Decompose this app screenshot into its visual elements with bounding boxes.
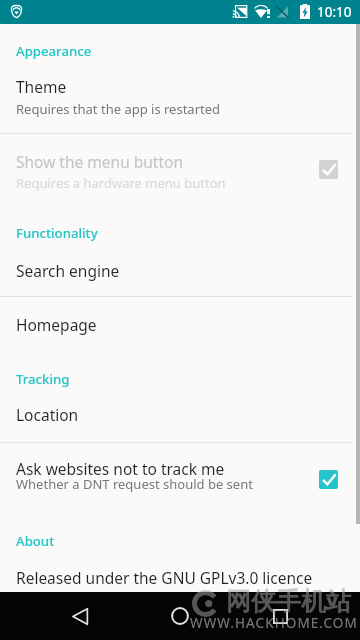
staticText: Ask websites not to track me (16, 458, 225, 479)
staticText: Appearance (16, 42, 92, 60)
staticText: Functionality (16, 224, 98, 242)
staticText: About (16, 532, 55, 550)
button[interactable]: Checked (319, 470, 338, 489)
staticText: 网侠手机站 (226, 586, 351, 617)
button[interactable]: Recent apps (256, 592, 304, 640)
button[interactable]: Back (56, 592, 104, 640)
button[interactable]: Unchecked (319, 160, 338, 179)
staticText: 10:10 (317, 3, 352, 21)
button[interactable]: Theme (0, 76, 360, 98)
button[interactable]: Ask websites not to track me (0, 458, 360, 480)
staticText: Tracking (16, 370, 70, 388)
button[interactable]: Homepage (0, 314, 360, 336)
staticText: Whether a DNT request should be sent (16, 475, 253, 493)
staticText: Location (16, 404, 79, 425)
button[interactable]: Released under the GNU GPLv3.0 licence (0, 567, 360, 589)
staticText: Homepage (16, 314, 97, 335)
button[interactable]: Home (156, 592, 204, 640)
button[interactable]: Show the menu button (0, 151, 360, 173)
staticText: Requires that the app is restarted (16, 100, 221, 118)
staticText: Released under the GNU GPLv3.0 licence (16, 567, 313, 588)
button[interactable]: Search engine (0, 260, 360, 282)
button[interactable]: Location (0, 404, 360, 426)
staticText: WWW.HACKHOME.COM (190, 614, 358, 632)
staticText: Requires a hardware menu button (16, 174, 226, 192)
staticText: Theme (16, 76, 67, 97)
staticText: Search engine (16, 260, 120, 281)
staticText: Show the menu button (16, 151, 183, 172)
